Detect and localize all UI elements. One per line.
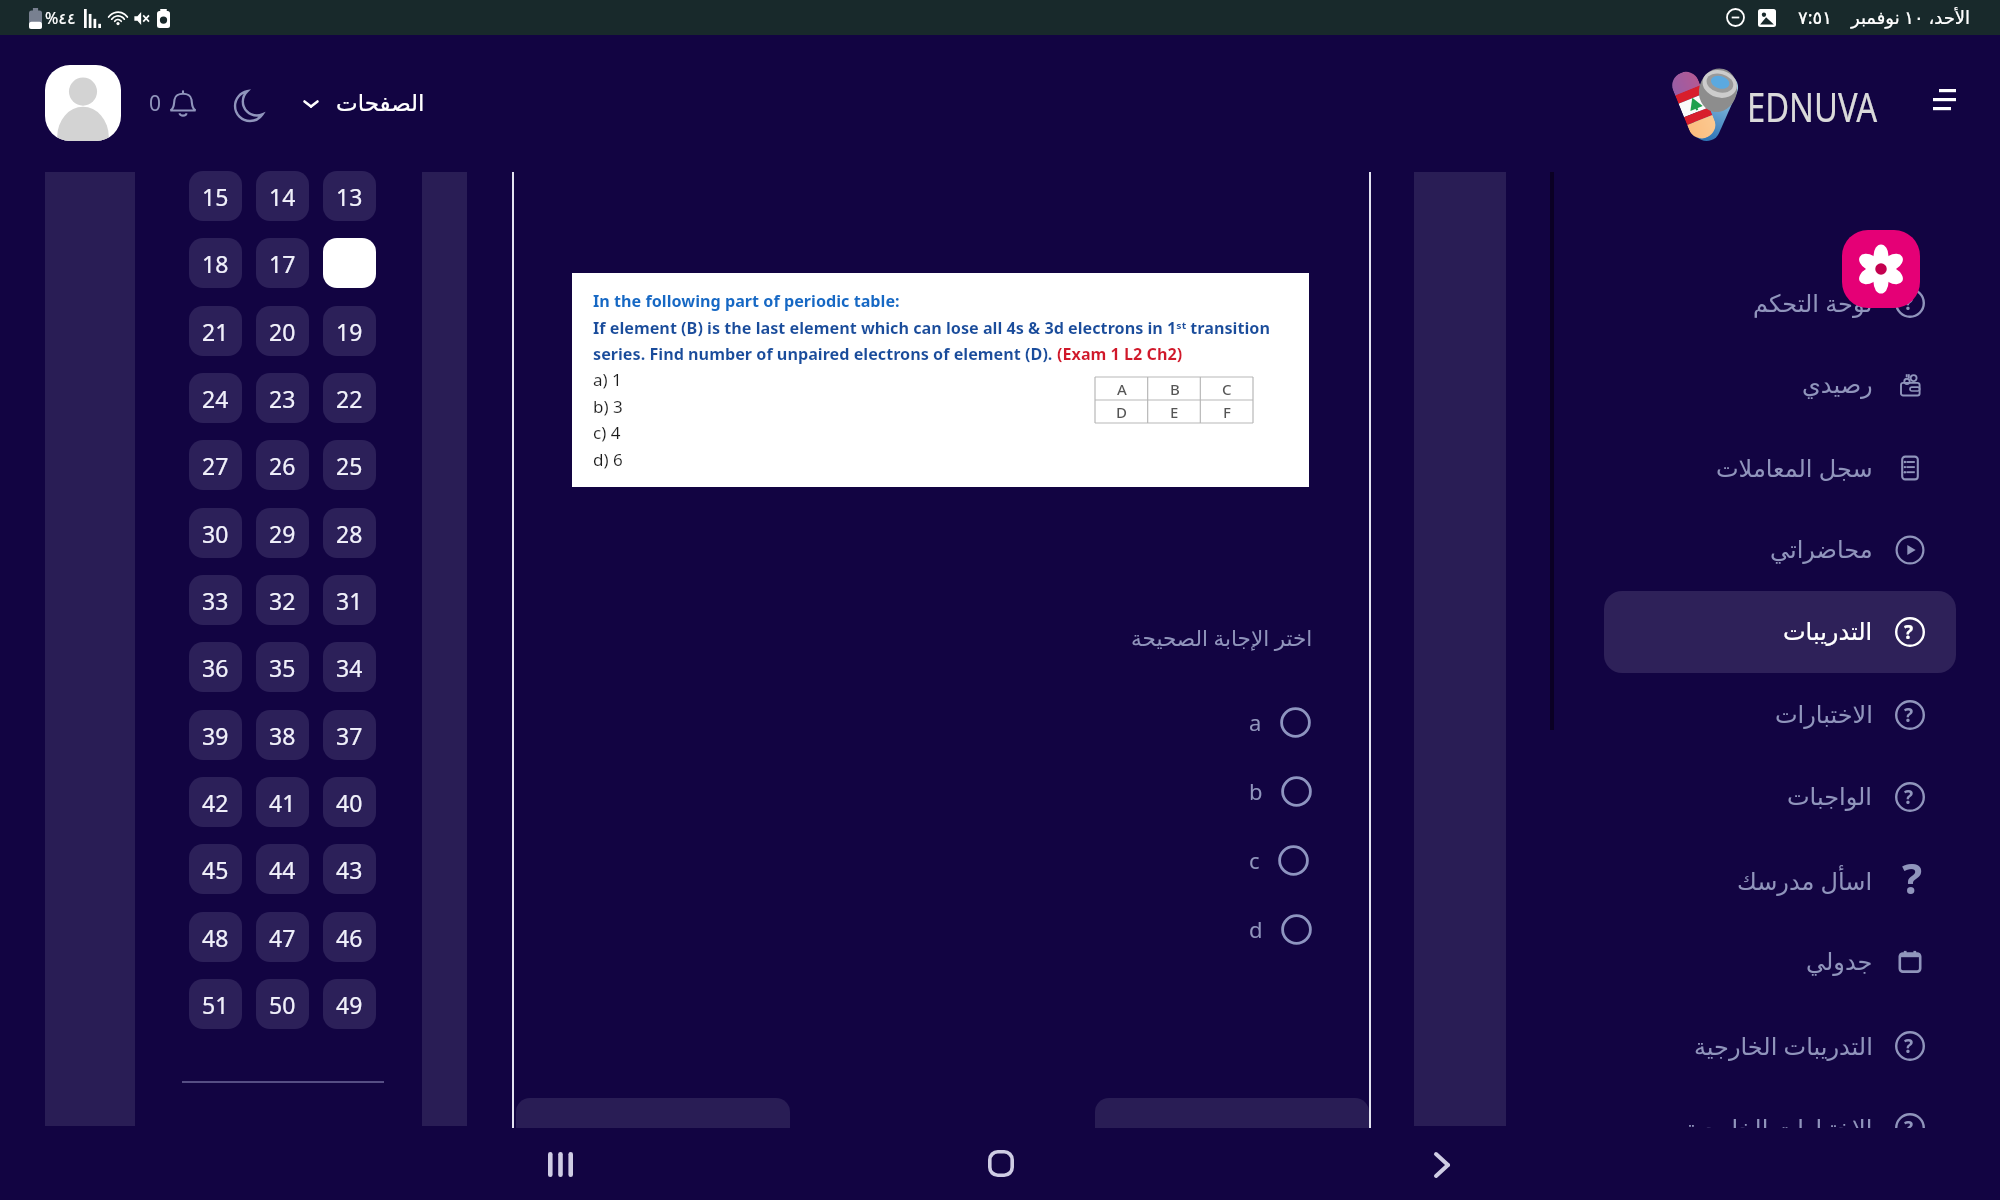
- staticText: ?: [1904, 290, 1914, 316]
- button[interactable]: Assistant: [1842, 230, 1920, 308]
- button[interactable]: 38: [256, 710, 309, 760]
- button[interactable]: 44: [256, 844, 309, 894]
- button[interactable]: 50: [256, 979, 309, 1029]
- staticText: ?: [1904, 619, 1914, 645]
- button[interactable]: جدولي: [1604, 921, 1956, 1003]
- button[interactable]: الصفحات: [299, 86, 429, 121]
- button[interactable]: الاختبارات: [1604, 674, 1956, 756]
- staticText: 19: [336, 316, 363, 347]
- staticText: 51: [202, 989, 229, 1020]
- button[interactable]: 15: [189, 171, 242, 221]
- button[interactable]: التدريبات الخارجية: [1604, 1004, 1956, 1086]
- button[interactable]: Menu: [1922, 78, 1966, 122]
- button[interactable]: اسأل مدرسك: [1604, 839, 1956, 921]
- button[interactable]: رصيدي: [1604, 344, 1956, 426]
- button[interactable]: 39: [189, 710, 242, 760]
- staticText: In the following part of periodic table:: [593, 290, 900, 312]
- button[interactable]: 17: [256, 238, 309, 288]
- staticText: d: [1249, 914, 1263, 944]
- button[interactable]: Back: [1419, 1142, 1464, 1187]
- button[interactable]: 35: [256, 642, 309, 692]
- button[interactable]: محاضراتي: [1604, 509, 1956, 591]
- button[interactable]: 46: [323, 912, 376, 962]
- button[interactable]: 25: [323, 440, 376, 490]
- staticText: 18: [202, 248, 229, 279]
- button[interactable]: 34: [323, 642, 376, 692]
- staticText: الاختبارات: [1775, 701, 1873, 729]
- staticText: ?: [1904, 1033, 1914, 1059]
- staticText: %٤٤: [45, 7, 76, 29]
- button[interactable]: الاختبارات الخارجية: [1604, 1086, 1956, 1128]
- button[interactable]: 51: [189, 979, 242, 1029]
- button[interactable]: 14: [256, 171, 309, 221]
- staticText: التدريبات: [1783, 618, 1873, 646]
- button[interactable]: 18: [189, 238, 242, 288]
- staticText: A: [1117, 379, 1127, 399]
- button[interactable]: 36: [189, 642, 242, 692]
- staticText: c: [1249, 845, 1260, 875]
- button[interactable]: 20: [256, 306, 309, 356]
- staticText: If element (B) is the last element which…: [593, 317, 1270, 339]
- button[interactable]: 29: [256, 508, 309, 558]
- button[interactable]: [323, 238, 376, 288]
- staticText: سجل المعاملات: [1716, 451, 1873, 484]
- button[interactable]: a: [1249, 690, 1311, 754]
- button[interactable]: 33: [189, 575, 242, 625]
- button[interactable]: الواجبات: [1604, 756, 1956, 838]
- staticText: 37: [336, 720, 363, 751]
- button[interactable]: 19: [323, 306, 376, 356]
- button[interactable]: d: [1249, 897, 1312, 961]
- button[interactable]: Dark mode: [229, 85, 271, 127]
- staticText: 50: [269, 989, 296, 1020]
- button[interactable]: 24: [189, 373, 242, 423]
- button[interactable]: Notifications: [145, 82, 204, 124]
- button[interactable]: 31: [323, 575, 376, 625]
- button[interactable]: 28: [323, 508, 376, 558]
- staticText: 44: [269, 854, 296, 885]
- staticText: 30: [202, 518, 229, 549]
- staticText: 31: [336, 585, 363, 616]
- button[interactable]: b: [1249, 759, 1312, 823]
- button[interactable]: 23: [256, 373, 309, 423]
- staticText: a) 1: [593, 368, 622, 391]
- button[interactable]: 26: [256, 440, 309, 490]
- button[interactable]: Recents: [538, 1142, 583, 1187]
- button[interactable]: 42: [189, 777, 242, 827]
- staticText: 40: [336, 787, 363, 818]
- staticText: E: [1170, 402, 1179, 422]
- button[interactable]: 40: [323, 777, 376, 827]
- button[interactable]: لوحة التحكم: [1604, 261, 1956, 343]
- button[interactable]: Profile: [45, 65, 121, 141]
- staticText: 0: [149, 89, 162, 118]
- button[interactable]: 37: [323, 710, 376, 760]
- button[interactable]: 45: [189, 844, 242, 894]
- button[interactable]: 43: [323, 844, 376, 894]
- staticText: EDNUVA: [1747, 78, 1878, 133]
- button[interactable]: Home: [978, 1141, 1023, 1186]
- staticText: الأحد، ١٠ نوفمبر: [1851, 5, 1971, 30]
- button[interactable]: 41: [256, 777, 309, 827]
- button[interactable]: 27: [189, 440, 242, 490]
- staticText: 20: [269, 316, 296, 347]
- staticText: 15: [202, 181, 229, 212]
- staticText: اختر الإجابة الصحيحة: [1131, 623, 1313, 652]
- button[interactable]: 30: [189, 508, 242, 558]
- staticText: جدولي: [1806, 948, 1873, 976]
- staticText: 48: [202, 922, 229, 953]
- staticText: 26: [269, 450, 296, 481]
- button[interactable]: 21: [189, 306, 242, 356]
- button[interactable]: 48: [189, 912, 242, 962]
- button[interactable]: 49: [323, 979, 376, 1029]
- button[interactable]: 22: [323, 373, 376, 423]
- button[interactable]: سجل المعاملات: [1604, 426, 1956, 508]
- button[interactable]: c: [1249, 828, 1309, 892]
- staticText: التدريبات الخارجية: [1694, 1029, 1873, 1062]
- button[interactable]: 32: [256, 575, 309, 625]
- button[interactable]: 13: [323, 171, 376, 221]
- button[interactable]: التدريبات: [1604, 591, 1956, 673]
- staticText: 45: [202, 854, 229, 885]
- staticText: 13: [336, 181, 363, 212]
- button[interactable]: 47: [256, 912, 309, 962]
